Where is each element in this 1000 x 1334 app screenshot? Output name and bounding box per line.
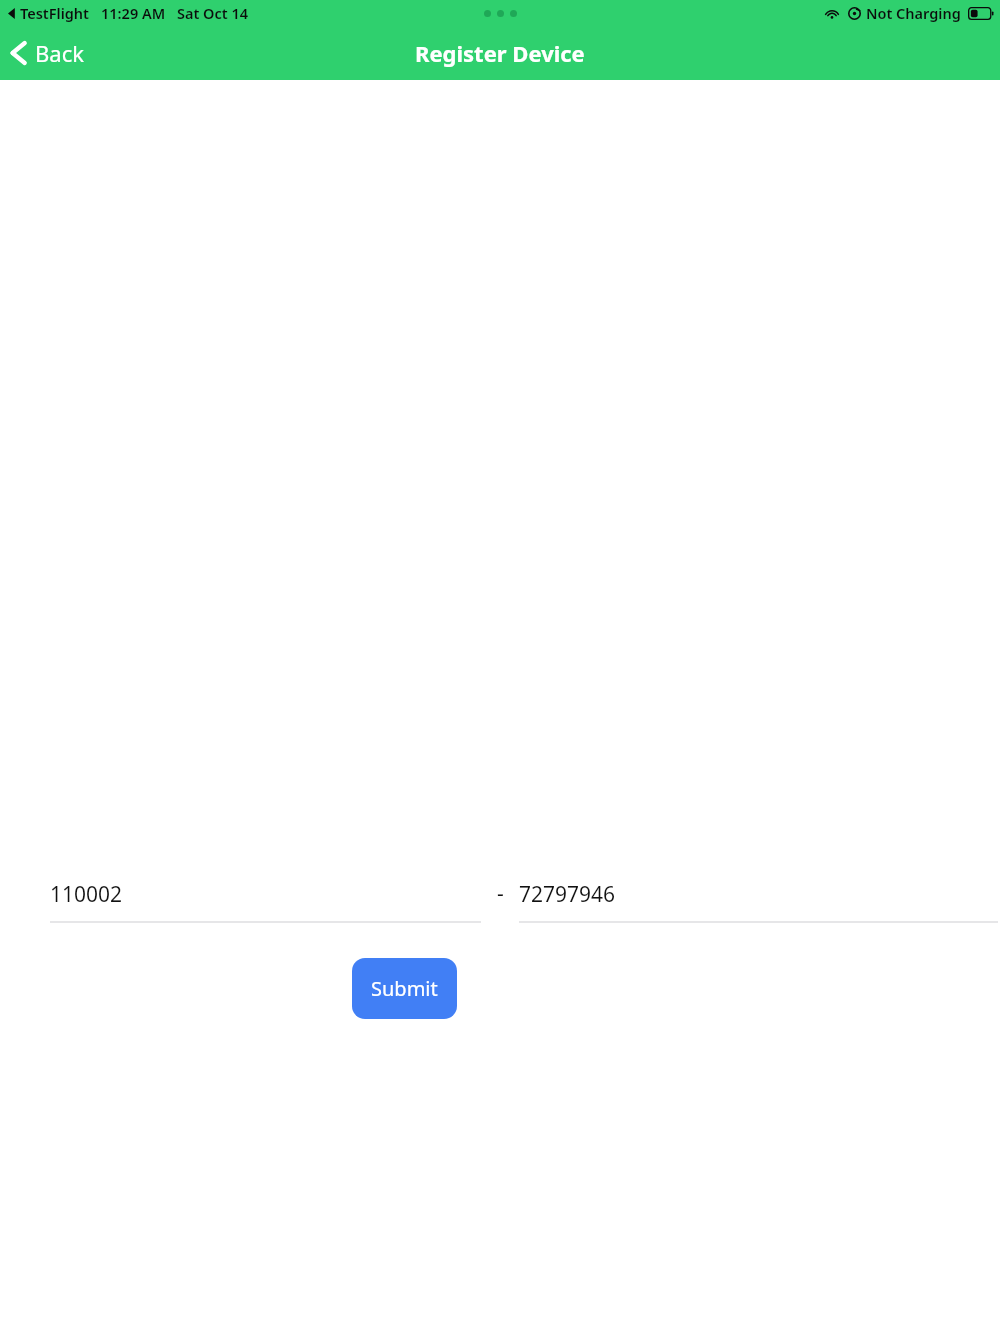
staticText: Sat Oct 14 [177, 3, 249, 23]
staticText: - [497, 879, 504, 908]
staticText: 72797946 [519, 880, 616, 909]
staticText: TestFlight [20, 3, 89, 23]
staticText: Register Device [415, 38, 585, 68]
button[interactable]: 110002 [50, 880, 481, 923]
button[interactable]: Submit [352, 958, 457, 1019]
staticText: Submit [371, 975, 438, 1002]
staticText: Back [35, 38, 84, 68]
staticText: Not Charging [866, 3, 961, 23]
button[interactable]: Back [0, 32, 98, 74]
button[interactable]: 72797946 [519, 880, 998, 923]
staticText: 11:29 AM [101, 3, 166, 23]
staticText: 110002 [50, 880, 123, 909]
